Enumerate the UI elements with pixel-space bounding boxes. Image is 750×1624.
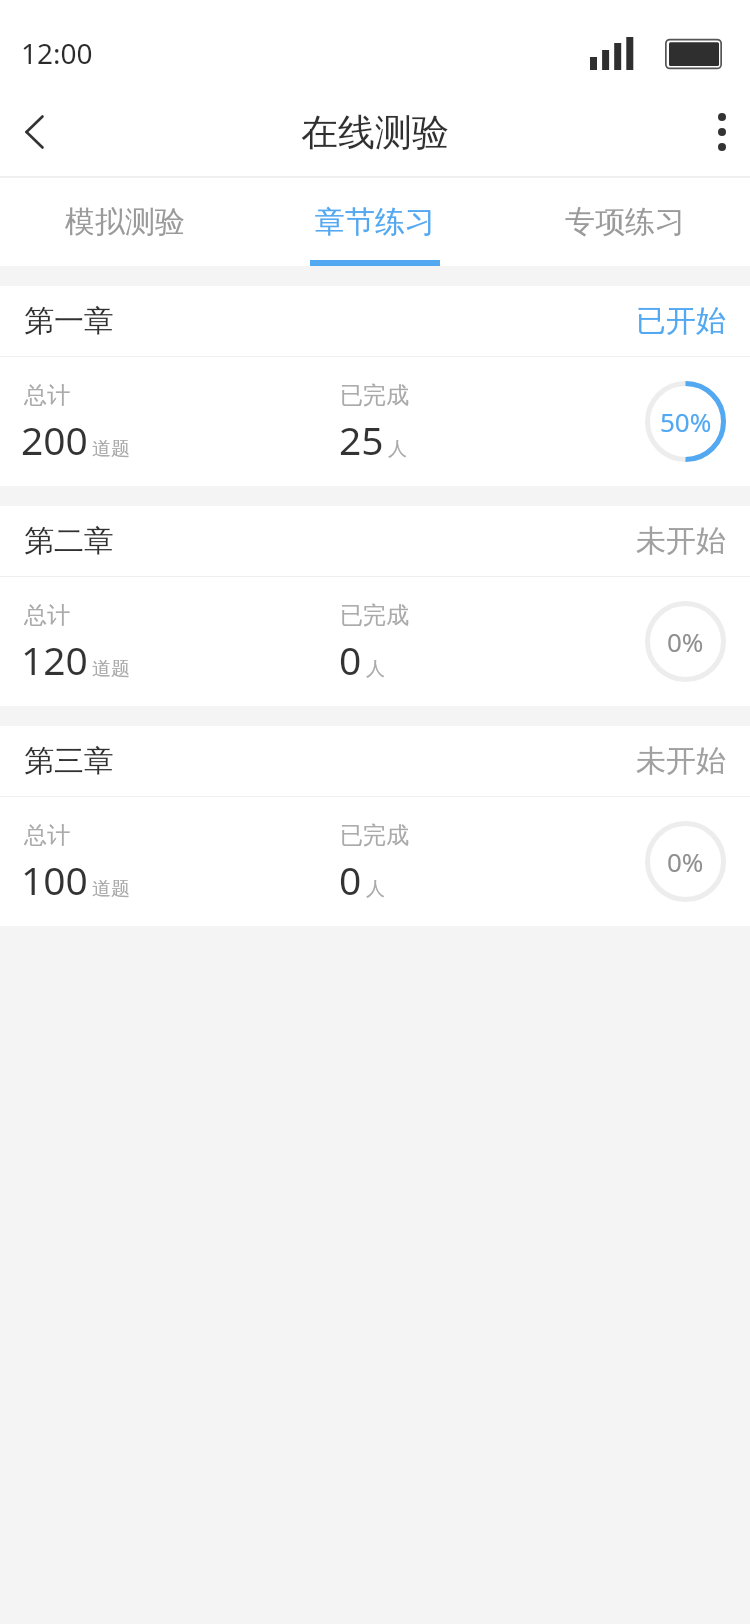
staticText: 120 bbox=[21, 633, 88, 686]
button[interactable]: 第二章 bbox=[0, 506, 750, 706]
button[interactable]: 模拟测验 bbox=[0, 178, 250, 266]
staticText: 第一章 bbox=[24, 302, 114, 340]
button[interactable]: 专项练习 bbox=[500, 178, 750, 266]
button[interactable]: 章节练习 bbox=[250, 178, 500, 266]
staticText: 0 bbox=[339, 853, 362, 906]
staticText: 道题 bbox=[92, 437, 130, 461]
button[interactable]: 第三章 bbox=[0, 726, 750, 926]
staticText: 100 bbox=[21, 853, 88, 906]
staticText: 模拟测验 bbox=[65, 203, 185, 241]
staticText: 专项练习 bbox=[565, 203, 685, 241]
button[interactable]: 第一章 bbox=[0, 286, 750, 486]
staticText: 0 bbox=[339, 633, 362, 686]
staticText: 总计 bbox=[24, 601, 70, 630]
button[interactable]: More options bbox=[694, 88, 750, 176]
other: Signal and battery status bbox=[590, 37, 723, 71]
staticText: 未开始 bbox=[636, 522, 726, 560]
staticText: 已完成 bbox=[340, 601, 409, 630]
staticText: 道题 bbox=[92, 877, 130, 901]
staticText: 人 bbox=[366, 877, 385, 901]
button[interactable]: Back bbox=[0, 88, 68, 176]
staticText: 总计 bbox=[24, 381, 70, 410]
staticText: 0% bbox=[667, 624, 704, 659]
staticText: 已完成 bbox=[340, 381, 409, 410]
staticText: 0% bbox=[667, 844, 704, 879]
staticText: 已完成 bbox=[340, 821, 409, 850]
staticText: 12:00 bbox=[21, 34, 93, 72]
staticText: 章节练习 bbox=[315, 203, 435, 241]
staticText: 道题 bbox=[92, 657, 130, 681]
staticText: 50% bbox=[660, 404, 712, 439]
staticText: 200 bbox=[21, 413, 88, 466]
staticText: 人 bbox=[366, 657, 385, 681]
staticText: 未开始 bbox=[636, 742, 726, 780]
staticText: 人 bbox=[388, 437, 407, 461]
staticText: 总计 bbox=[24, 821, 70, 850]
staticText: 在线测验 bbox=[301, 109, 449, 156]
staticText: 25 bbox=[339, 413, 384, 466]
staticText: 第二章 bbox=[24, 522, 114, 560]
staticText: 已开始 bbox=[636, 302, 726, 340]
staticText: 第三章 bbox=[24, 742, 114, 780]
